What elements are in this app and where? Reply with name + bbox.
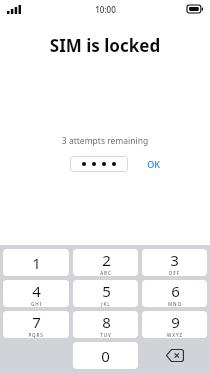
button[interactable]: 8 (73, 311, 138, 338)
staticText: ABC (100, 270, 112, 276)
button[interactable]: 1 (3, 249, 69, 276)
button[interactable]: 9 (142, 311, 207, 338)
button[interactable]: OK (147, 158, 160, 170)
staticText: 0 (101, 346, 110, 366)
staticText: SIM is locked (0, 34, 210, 57)
staticText: PQRS (28, 332, 44, 338)
staticText: 2 (102, 250, 111, 270)
button[interactable]: 5 (73, 280, 138, 307)
button[interactable]: 6 (142, 280, 207, 307)
staticText: 9 (171, 312, 180, 332)
button[interactable]: 2 (73, 249, 138, 276)
button[interactable]: 3 (142, 249, 207, 276)
staticText: MNO (168, 301, 182, 307)
staticText: GHI (31, 301, 42, 307)
staticText: WXYZ (167, 332, 183, 338)
button[interactable]: Delete (142, 342, 207, 369)
staticText: 3 attempts remaining (0, 135, 210, 147)
staticText: JKL (101, 301, 111, 307)
staticText: 5 (102, 281, 111, 301)
staticText: DEF (169, 270, 180, 276)
button[interactable]: 7 (3, 311, 69, 338)
staticText: 10:00 (95, 4, 116, 15)
button[interactable] (70, 156, 128, 172)
staticText: 3 (170, 250, 179, 270)
button[interactable]: 4 (3, 280, 69, 307)
staticText: OK (147, 158, 160, 170)
staticText: 6 (171, 281, 180, 301)
staticText: TUV (100, 332, 112, 338)
staticText: 8 (102, 312, 111, 332)
staticText: 4 (32, 281, 41, 301)
staticText: 7 (32, 312, 41, 332)
button[interactable]: 0 (73, 342, 138, 369)
staticText: 1 (32, 253, 41, 273)
